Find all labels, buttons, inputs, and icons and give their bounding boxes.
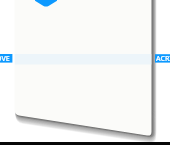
button[interactable]: Move — [0, 54, 12, 63]
staticText: ACRI — [156, 54, 170, 63]
button[interactable]: Archive — [156, 54, 170, 63]
staticText: OVE — [0, 54, 10, 63]
